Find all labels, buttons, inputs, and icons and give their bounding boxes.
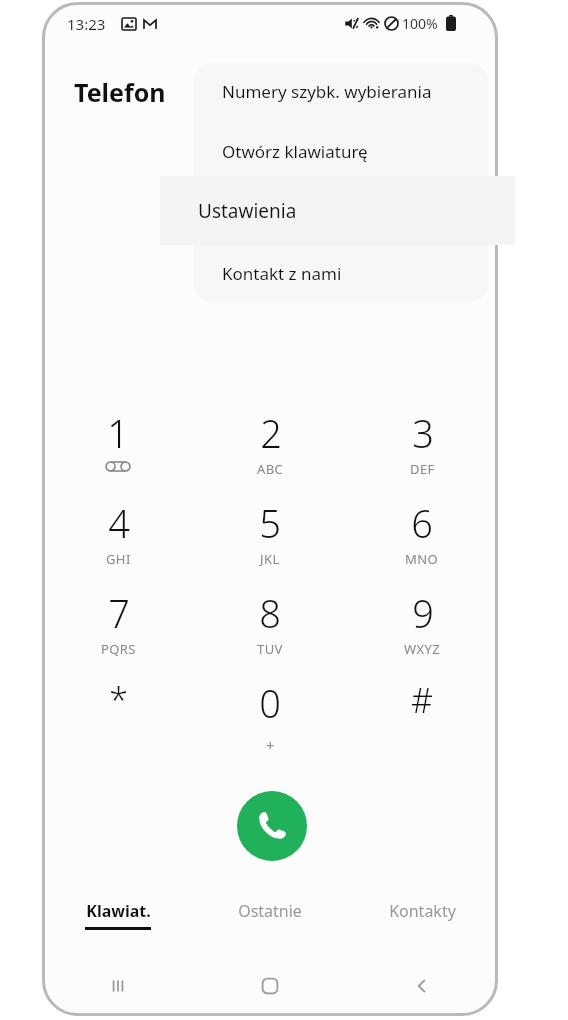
staticText: 7	[108, 587, 130, 639]
staticText: Klawiat.	[86, 900, 151, 922]
button[interactable]: 0	[194, 667, 346, 757]
staticText: TUV	[257, 640, 283, 658]
staticText: 2	[260, 407, 282, 459]
button[interactable]: 1	[42, 397, 194, 487]
staticText: 6	[411, 497, 433, 549]
button[interactable]: #	[346, 667, 498, 757]
staticText: Otwórz klawiaturę	[222, 140, 368, 163]
staticText: #	[411, 677, 433, 723]
button[interactable]: Numery szybk. wybierania	[194, 63, 488, 120]
button[interactable]: 5	[194, 487, 346, 577]
staticText: 3	[412, 407, 434, 459]
button[interactable]: 4	[42, 487, 194, 577]
button[interactable]: 3	[346, 397, 498, 487]
staticText: +	[266, 735, 275, 755]
button[interactable]: Back	[346, 960, 498, 1012]
staticText: 0	[259, 677, 281, 729]
staticText: 1	[107, 407, 129, 459]
button[interactable]: Kontakty	[346, 900, 498, 948]
staticText: DEF	[410, 460, 435, 478]
staticText: WXYZ	[404, 640, 441, 658]
button[interactable]: 7	[42, 577, 194, 667]
staticText: Kontakty	[389, 900, 456, 922]
staticText: Ustawienia	[222, 200, 311, 223]
button[interactable]: Kontakt z nami	[194, 245, 488, 302]
button[interactable]: *	[42, 667, 194, 757]
staticText: ABC	[257, 460, 284, 478]
button[interactable]: Ustawienia	[160, 176, 515, 245]
staticText: 13:23	[67, 14, 106, 34]
button[interactable]: 8	[194, 577, 346, 667]
staticText: Numery szybk. wybierania	[222, 80, 432, 103]
staticText: 9	[412, 587, 434, 639]
staticText: 4	[108, 497, 130, 549]
staticText: Telefon	[74, 75, 166, 109]
staticText: JKL	[260, 550, 280, 568]
staticText: 100%	[402, 14, 438, 33]
button[interactable]: Ustawienia	[194, 183, 488, 240]
button[interactable]: 9	[346, 577, 498, 667]
button[interactable]: Recents	[42, 960, 194, 1012]
button[interactable]: 6	[346, 487, 498, 577]
staticText: Ostatnie	[238, 900, 302, 922]
button[interactable]: 2	[194, 397, 346, 487]
staticText: Ustawienia	[198, 198, 297, 224]
button[interactable]: Home	[194, 960, 346, 1012]
staticText: *	[109, 677, 128, 723]
button[interactable]: Call	[237, 791, 307, 861]
staticText: PQRS	[101, 640, 136, 658]
staticText: MNO	[405, 550, 439, 568]
button[interactable]: Klawiat.	[42, 900, 194, 948]
staticText: GHI	[106, 550, 131, 568]
button[interactable]: Ostatnie	[194, 900, 346, 948]
staticText: 8	[259, 587, 281, 639]
staticText: Kontakt z nami	[222, 262, 342, 285]
staticText: 5	[259, 497, 281, 549]
button[interactable]: Otwórz klawiaturę	[194, 123, 488, 180]
